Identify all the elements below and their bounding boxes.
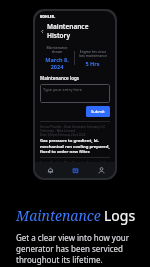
button[interactable]: Service Provider - Dean Generator Compan…: [40, 125, 110, 154]
staticText: Maintenance: [16, 206, 101, 225]
staticText: Maintenance logs: [40, 75, 79, 81]
staticText: Maintenance History: [47, 22, 110, 40]
staticText: Get a clear view into how your generator…: [16, 232, 140, 265]
staticText: Service Provider - Dean Generator Compan…: [40, 125, 106, 129]
staticText: Maintenance shown: [46, 45, 68, 54]
button[interactable]: Service Provider - Dean Generator Compan…: [40, 161, 110, 162]
other: Back: [40, 29, 45, 34]
staticText: Date 3:30pm February 22nd 2024: [40, 133, 86, 137]
button[interactable]: Type your entry here: [40, 84, 110, 103]
button[interactable]: Profile: [90, 162, 112, 178]
staticText: Gas pressure to gradient, bi-mechanical …: [40, 138, 110, 154]
button[interactable]: Back: [40, 22, 110, 40]
staticText: March 8, 2024: [42, 56, 72, 70]
staticText: Logs: [104, 206, 136, 225]
staticText: Type your entry here: [43, 87, 83, 92]
staticText: Service Provider - Dean Generator Compan…: [40, 161, 106, 162]
staticText: Engine hrs since last maintenance: [79, 49, 107, 58]
button[interactable]: Generator: [64, 162, 86, 178]
staticText: 5 Hrs: [85, 60, 100, 67]
button[interactable]: Submit: [86, 106, 110, 117]
button[interactable]: Notifications: [39, 162, 61, 178]
staticText: Technician - Mike Leonard: [40, 129, 76, 133]
staticText: Submit: [91, 109, 105, 114]
staticText: KOHLER.: [40, 14, 56, 19]
